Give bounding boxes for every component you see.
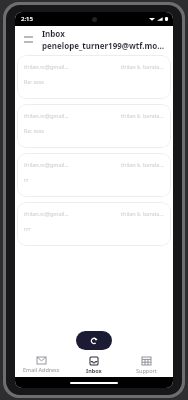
staticText: rr <box>24 176 29 183</box>
staticText: thilan k. banda... <box>121 161 164 168</box>
staticText: Inbox <box>86 367 102 374</box>
staticText: penelope_turner199@wtf.moto... <box>42 40 167 51</box>
button[interactable]: Menu <box>20 31 36 47</box>
button[interactable]: thilan.rc@gmail... <box>17 104 171 148</box>
staticText: thilan.rc@gmail... <box>24 161 69 168</box>
staticText: thilan k. banda... <box>121 210 164 217</box>
staticText: Re: ssss <box>24 78 44 85</box>
staticText: thilan k. banda... <box>121 112 164 119</box>
staticText: Inbox <box>42 28 65 39</box>
staticText: Email Address <box>23 366 60 373</box>
button[interactable]: Support <box>120 353 173 377</box>
button[interactable]: Inbox <box>67 353 120 377</box>
button[interactable]: thilan.rc@gmail... <box>17 153 171 197</box>
staticText: Support <box>136 367 157 374</box>
staticText: Re: ssss <box>24 127 44 134</box>
button[interactable]: Refresh <box>76 331 112 350</box>
staticText: rrr <box>24 225 31 232</box>
staticText: thilan.rc@gmail... <box>24 210 69 217</box>
staticText: thilan.rc@gmail... <box>24 63 69 70</box>
button[interactable]: Email Address <box>15 353 67 377</box>
button[interactable]: thilan.rc@gmail... <box>17 202 171 246</box>
staticText: thilan k. banda... <box>121 63 164 70</box>
staticText: 2:15 <box>21 15 33 23</box>
staticText: thilan.rc@gmail... <box>24 112 69 119</box>
button[interactable]: thilan.rc@gmail... <box>17 55 171 99</box>
